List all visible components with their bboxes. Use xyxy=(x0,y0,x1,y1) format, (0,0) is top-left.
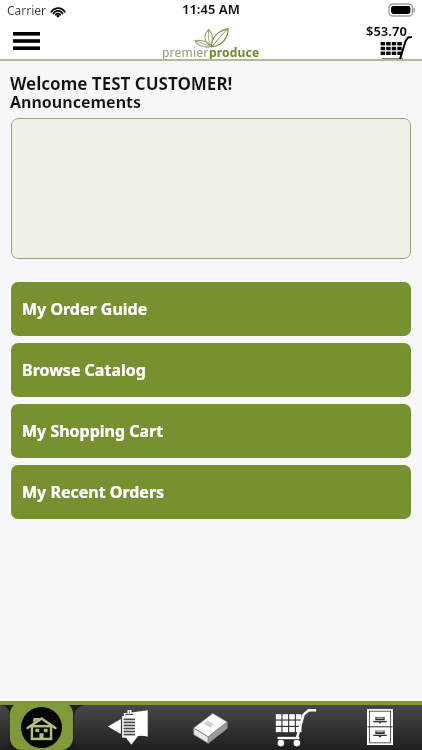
staticText: My Shopping Cart xyxy=(22,420,164,442)
button[interactable]: Browse Catalog xyxy=(11,343,411,397)
staticText: Announcements xyxy=(10,91,142,113)
staticText: Carrier xyxy=(7,2,47,18)
button[interactable]: Orders xyxy=(338,701,422,750)
staticText: My Order Guide xyxy=(22,298,148,320)
button[interactable]: My Order Guide xyxy=(11,282,411,336)
button[interactable]: Home xyxy=(10,702,73,750)
staticText: premier xyxy=(162,44,209,60)
staticText: 11:45 AM xyxy=(182,0,241,18)
staticText: $53.70 xyxy=(366,22,407,40)
button[interactable]: Catalog xyxy=(170,701,254,750)
staticText: My Recent Orders xyxy=(22,481,165,503)
staticText: Browse Catalog xyxy=(22,359,146,381)
button[interactable]: My Shopping Cart xyxy=(11,404,411,458)
button[interactable]: Order Guide xyxy=(85,701,170,750)
button[interactable]: My Recent Orders xyxy=(11,465,411,519)
button[interactable]: Cart xyxy=(254,701,338,750)
button[interactable]: Cart xyxy=(362,20,422,61)
staticText: Welcome TEST CUSTOMER! xyxy=(10,72,233,95)
button[interactable]: Menu xyxy=(6,21,46,61)
staticText: produce xyxy=(209,44,260,60)
